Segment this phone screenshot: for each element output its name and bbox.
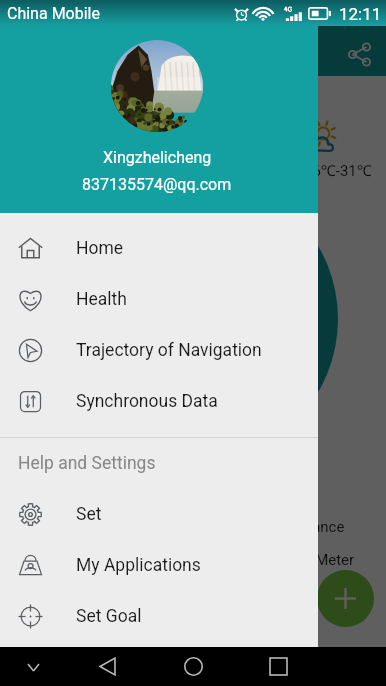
staticText: China Mobile	[7, 4, 100, 23]
staticText: Set	[76, 504, 102, 525]
staticText: 12:11	[339, 4, 382, 24]
staticText: Distance	[286, 518, 345, 536]
staticText: Synchronous Data	[76, 391, 218, 412]
button[interactable]: Recents	[255, 647, 301, 686]
staticText: Trajectory of Navigation	[76, 340, 262, 361]
button[interactable]: Trajectory of Navigation	[0, 325, 318, 376]
staticText: 26℃-31℃	[304, 160, 372, 180]
button[interactable]: Home	[170, 647, 216, 686]
staticText: My Applications	[76, 555, 201, 576]
staticText: Health	[76, 289, 127, 310]
button[interactable]: Back	[84, 647, 130, 686]
button[interactable]: Share	[337, 32, 381, 76]
staticText: 0 Meter	[303, 551, 355, 569]
button[interactable]: Set Goal	[0, 591, 318, 642]
button[interactable]: Hide	[15, 649, 51, 685]
button[interactable]: My Applications	[0, 540, 318, 591]
button[interactable]: Home	[0, 223, 318, 274]
button[interactable]: Profile photo	[111, 40, 203, 132]
button[interactable]: Synchronous Data	[0, 376, 318, 427]
button[interactable]: Set	[0, 489, 318, 540]
staticText: Set Goal	[76, 606, 142, 627]
staticText: Xingzhelicheng	[103, 148, 212, 167]
staticText: Help and Settings	[18, 453, 156, 474]
staticText: Home	[76, 238, 124, 259]
staticText: 837135574@qq.com	[82, 175, 232, 194]
button[interactable]: Health	[0, 274, 318, 325]
button[interactable]: Add	[317, 570, 374, 627]
